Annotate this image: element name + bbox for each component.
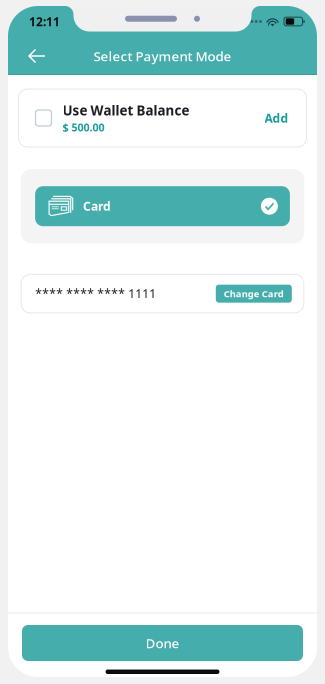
staticText: Select Payment Mode bbox=[93, 47, 231, 65]
staticText: Card bbox=[83, 198, 111, 214]
staticText: Use Wallet Balance bbox=[62, 102, 189, 119]
button[interactable]: Back bbox=[19, 37, 55, 75]
button[interactable]: Change Card bbox=[216, 285, 292, 303]
staticText: **** **** **** 1111 bbox=[35, 286, 156, 302]
staticText: Done bbox=[145, 634, 179, 652]
button[interactable]: Add bbox=[260, 104, 292, 132]
button[interactable]: Card bbox=[35, 186, 290, 226]
staticText: 12:11 bbox=[29, 13, 60, 29]
staticText: $ 500.00 bbox=[62, 120, 104, 134]
staticText: Change Card bbox=[224, 287, 284, 300]
button[interactable]: Done bbox=[22, 625, 303, 661]
staticText: Add bbox=[264, 110, 288, 126]
button[interactable]: Use wallet balance bbox=[35, 110, 51, 126]
